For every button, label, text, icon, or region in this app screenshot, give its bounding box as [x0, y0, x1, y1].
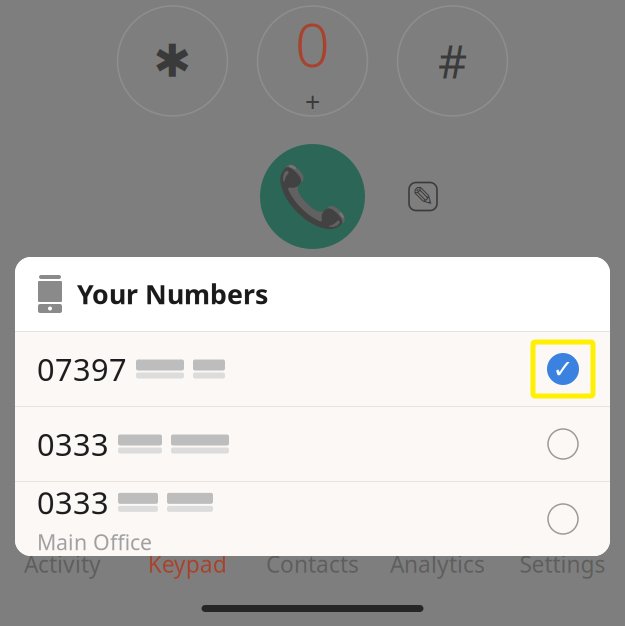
- staticText: 0: [295, 3, 330, 84]
- button[interactable]: Contacts: [250, 549, 375, 579]
- staticText: 📞: [276, 163, 349, 230]
- button[interactable]: Edit number: [400, 173, 446, 219]
- button[interactable]: Call: [260, 144, 365, 249]
- button[interactable]: Settings: [500, 549, 625, 579]
- staticText: Keypad: [148, 549, 227, 579]
- button[interactable]: Star key: [117, 6, 227, 116]
- staticText: ✱: [153, 35, 191, 87]
- staticText: Settings: [519, 549, 605, 579]
- staticText: ✎: [412, 181, 434, 212]
- button[interactable]: Pound key: [397, 6, 507, 116]
- staticText: 0333: [37, 424, 109, 464]
- button[interactable]: Activity: [0, 549, 125, 579]
- staticText: #: [438, 31, 467, 91]
- button[interactable]: Keypad: [125, 549, 250, 579]
- staticText: +: [305, 84, 320, 119]
- button[interactable]: 0333: [15, 407, 610, 481]
- staticText: Your Numbers: [77, 276, 268, 312]
- button[interactable]: Analytics: [375, 549, 500, 579]
- button[interactable]: 0333: [15, 482, 610, 556]
- staticText: 07397: [37, 349, 127, 389]
- staticText: Contacts: [266, 549, 359, 579]
- staticText: Analytics: [390, 549, 485, 579]
- staticText: Main Office: [37, 528, 152, 556]
- button[interactable]: 07397: [15, 332, 610, 406]
- staticText: 0333: [37, 482, 109, 523]
- staticText: Activity: [24, 549, 101, 579]
- button[interactable]: Zero key: [257, 6, 367, 116]
- staticText: ✓: [552, 355, 573, 383]
